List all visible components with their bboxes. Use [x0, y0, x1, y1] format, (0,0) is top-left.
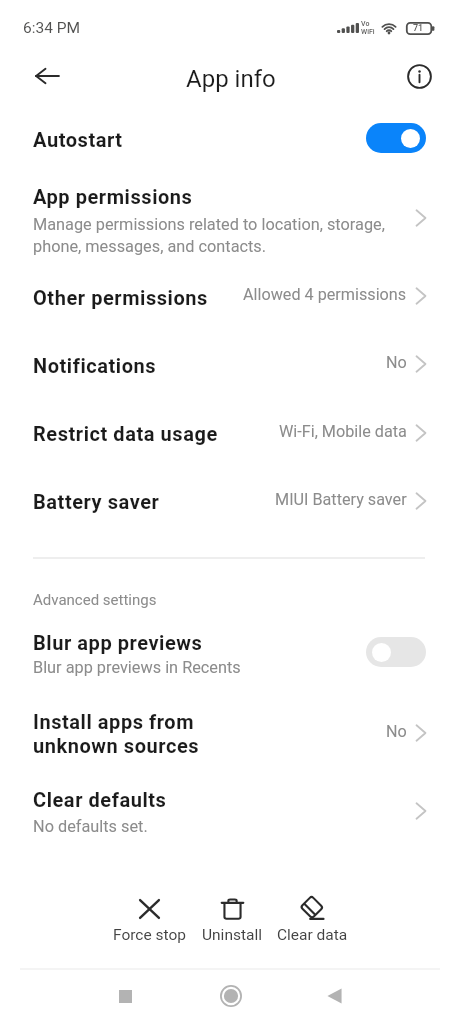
button[interactable]: Install apps from unknown sources: [0, 696, 461, 764]
staticText: No defaults set.: [33, 817, 148, 836]
button[interactable]: Autostart: [0, 110, 461, 166]
button[interactable]: App permissions: [0, 168, 461, 258]
staticText: Vo: [361, 20, 370, 28]
button[interactable]: Home: [211, 976, 251, 1016]
staticText: Clear defaults: [33, 788, 167, 811]
button[interactable]: Clear defaults: [0, 774, 461, 842]
staticText: Blur app previews in Recents: [33, 658, 241, 677]
button[interactable]: Other permissions: [0, 262, 461, 318]
staticText: Autostart: [33, 128, 123, 151]
button[interactable]: Back: [314, 976, 354, 1016]
staticText: WiFi: [361, 28, 375, 36]
staticText: Force stop: [113, 926, 186, 944]
button[interactable]: Switch off: [366, 637, 426, 667]
staticText: Notifications: [33, 354, 157, 377]
staticText: Blur app previews: [33, 631, 203, 654]
staticText: No: [386, 353, 407, 372]
staticText: Wi-Fi, Mobile data: [279, 422, 407, 441]
button[interactable]: About this app: [401, 58, 437, 94]
staticText: Uninstall: [202, 926, 262, 944]
button[interactable]: Force stop: [107, 896, 191, 946]
staticText: Other permissions: [33, 286, 208, 309]
staticText: Battery saver: [33, 490, 160, 513]
staticText: Manage permissions related to location, …: [33, 215, 385, 256]
button[interactable]: Switch on: [366, 123, 426, 153]
staticText: App info: [186, 65, 276, 93]
staticText: Allowed 4 permissions: [243, 285, 407, 304]
button[interactable]: Blur app previews: [0, 616, 461, 686]
staticText: Advanced settings: [33, 591, 157, 609]
button[interactable]: Battery saver: [0, 466, 461, 522]
staticText: 6:34 PM: [23, 19, 81, 37]
staticText: Restrict data usage: [33, 422, 218, 445]
staticText: Clear data: [277, 926, 348, 944]
button[interactable]: Back: [27, 56, 67, 96]
button[interactable]: Clear data: [270, 896, 354, 946]
staticText: 71: [413, 23, 424, 34]
staticText: No: [386, 722, 407, 741]
staticText: Install apps from unknown sources: [33, 710, 200, 758]
button[interactable]: Uninstall: [190, 896, 274, 946]
staticText: App permissions: [33, 185, 193, 208]
button[interactable]: Recents: [105, 976, 145, 1016]
button[interactable]: Notifications: [0, 330, 461, 386]
button[interactable]: Restrict data usage: [0, 398, 461, 454]
staticText: MIUI Battery saver: [275, 490, 407, 509]
